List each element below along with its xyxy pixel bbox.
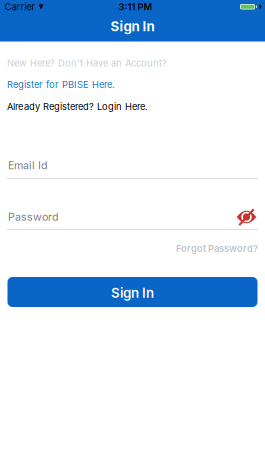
button[interactable]: Register for PBISE Here.: [7, 79, 115, 90]
staticText: Register for PBISE Here.: [7, 79, 115, 90]
button[interactable]: Sign In: [7, 277, 257, 307]
button[interactable]: Show Password: [236, 208, 256, 225]
staticText: Sign In: [111, 285, 154, 301]
staticText: Carrier: [4, 1, 35, 12]
staticText: Sign In: [110, 19, 154, 34]
staticText: Forgot Password?: [176, 243, 258, 254]
staticText: 3:11 PM: [118, 1, 152, 12]
staticText: Password: [8, 210, 59, 223]
staticText: Already Registered? Login Here.: [7, 101, 148, 112]
button[interactable]: Forgot Password?: [176, 243, 258, 254]
staticText: Email Id: [8, 159, 48, 172]
staticText: New Here? Don't Have an Account?: [7, 57, 167, 68]
